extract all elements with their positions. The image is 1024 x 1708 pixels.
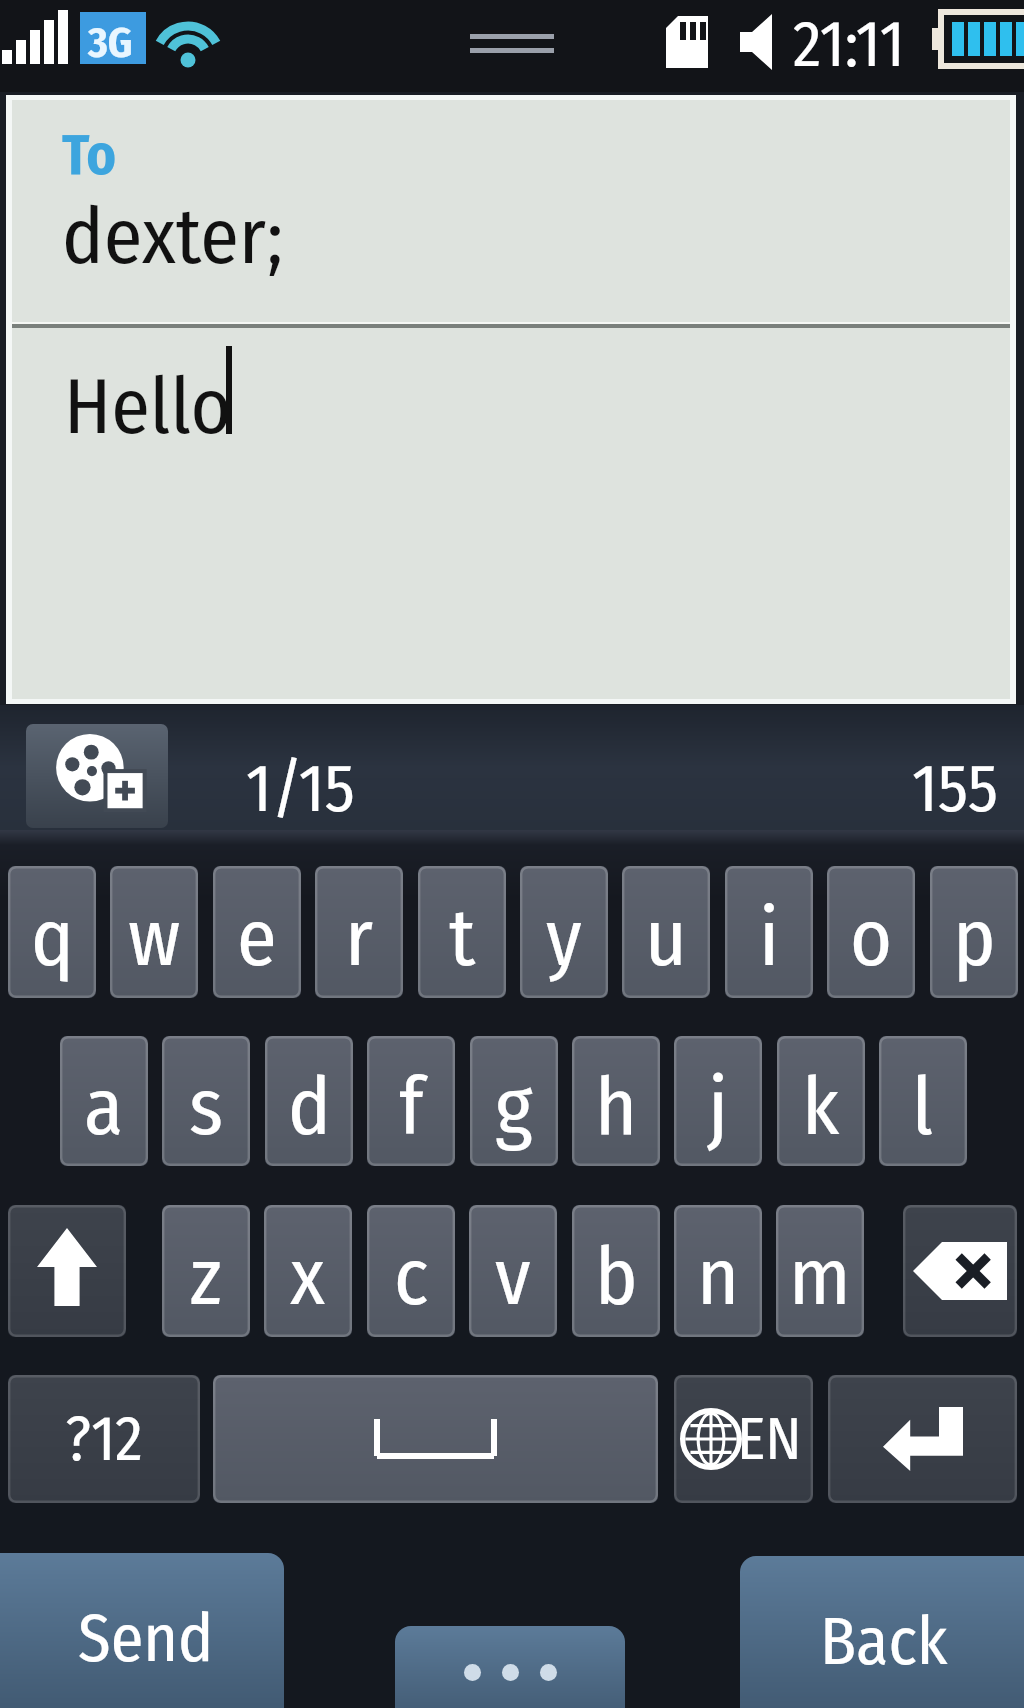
staticText: a (84, 1059, 124, 1155)
button[interactable]: p (930, 866, 1018, 998)
button[interactable]: To (0, 94, 1024, 322)
button[interactable]: ?12 (8, 1375, 200, 1503)
button[interactable]: x (264, 1205, 352, 1337)
button[interactable]: Shift (8, 1205, 126, 1337)
staticText: EN (737, 1403, 802, 1475)
staticText: 3G (88, 18, 133, 68)
button[interactable]: w (110, 866, 198, 998)
button[interactable]: Language EN (674, 1375, 813, 1503)
staticText: t (449, 890, 476, 986)
button[interactable]: Hello (0, 328, 1024, 705)
staticText: r (345, 890, 373, 986)
button[interactable]: t (418, 866, 506, 998)
button[interactable]: Enter (828, 1375, 1017, 1503)
staticText: i (759, 890, 780, 986)
button[interactable]: Add attachment (26, 724, 168, 828)
staticText: 1/15 (246, 749, 355, 828)
staticText: x (290, 1229, 326, 1325)
staticText: e (237, 890, 277, 986)
staticText: z (190, 1229, 222, 1325)
staticText: b (595, 1229, 638, 1325)
button[interactable]: k (777, 1036, 865, 1166)
staticText: y (546, 890, 582, 986)
staticText: o (850, 890, 893, 986)
button[interactable]: d (265, 1036, 353, 1166)
button[interactable]: Backspace (903, 1205, 1017, 1337)
staticText: q (31, 890, 74, 986)
staticText: j (708, 1059, 729, 1155)
button[interactable]: r (315, 866, 403, 998)
staticText: s (189, 1059, 224, 1155)
staticText: 155 (912, 749, 998, 828)
button[interactable]: More options (395, 1626, 625, 1708)
button[interactable]: v (469, 1205, 557, 1337)
button[interactable]: f (367, 1036, 455, 1166)
staticText: m (789, 1229, 851, 1325)
button[interactable]: i (725, 866, 813, 998)
staticText: h (595, 1059, 638, 1155)
staticText: g (495, 1059, 533, 1155)
button[interactable]: j (674, 1036, 762, 1166)
button[interactable]: q (8, 866, 96, 998)
button[interactable]: s (162, 1036, 250, 1166)
button[interactable]: Back (740, 1556, 1024, 1708)
button[interactable]: b (572, 1205, 660, 1337)
staticText: f (399, 1059, 424, 1155)
button[interactable]: n (674, 1205, 762, 1337)
staticText: w (128, 890, 181, 986)
button[interactable]: Space (213, 1375, 658, 1503)
button[interactable]: l (879, 1036, 967, 1166)
staticText: 21:11 (793, 6, 905, 83)
staticText: n (697, 1229, 740, 1325)
button[interactable]: y (520, 866, 608, 998)
staticText: p (953, 890, 996, 986)
button[interactable]: m (776, 1205, 864, 1337)
button[interactable]: u (622, 866, 710, 998)
staticText: dexter; (62, 190, 284, 284)
button[interactable]: g (470, 1036, 558, 1166)
button[interactable]: Send (0, 1553, 284, 1708)
staticText: c (394, 1229, 429, 1325)
staticText: Hello (64, 360, 232, 454)
staticText: k (802, 1059, 840, 1155)
staticText: ?12 (65, 1402, 143, 1476)
staticText: l (912, 1059, 934, 1155)
button[interactable]: e (213, 866, 301, 998)
staticText: Back (820, 1602, 948, 1681)
button[interactable]: o (827, 866, 915, 998)
staticText: u (645, 890, 687, 986)
button[interactable]: a (60, 1036, 148, 1166)
button[interactable]: h (572, 1036, 660, 1166)
staticText: To (62, 122, 117, 189)
button[interactable]: c (367, 1205, 455, 1337)
button[interactable]: z (162, 1205, 250, 1337)
staticText: d (288, 1059, 331, 1155)
staticText: Send (78, 1599, 214, 1678)
staticText: v (495, 1229, 531, 1325)
